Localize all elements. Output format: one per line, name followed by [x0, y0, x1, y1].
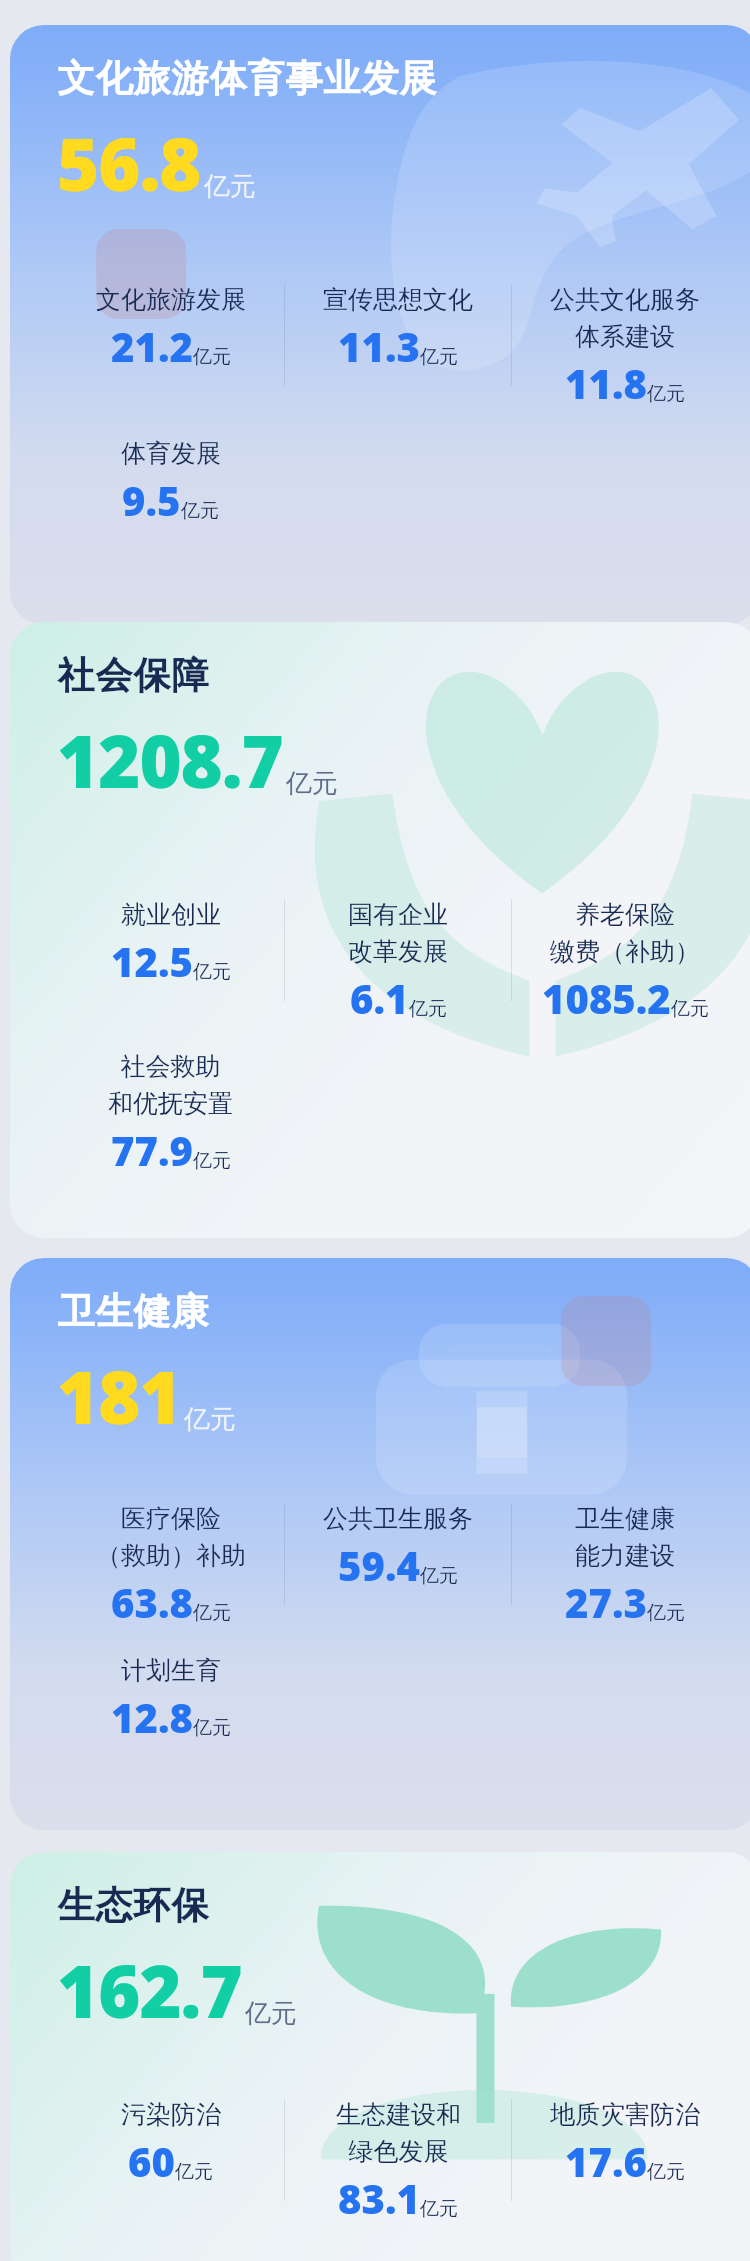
- staticText: 卫生健康 能力建设: [575, 1503, 675, 1571]
- staticText: 养老保险 缴费（补助）: [550, 899, 700, 967]
- staticText: 亿元: [647, 382, 685, 406]
- staticText: 亿元: [193, 1149, 231, 1173]
- button[interactable]: 公共卫生服务: [291, 1503, 505, 1592]
- staticText: 1208.7: [57, 711, 283, 809]
- staticText: 亿元: [647, 1601, 685, 1625]
- button[interactable]: 卫生健康: [10, 1258, 750, 1830]
- button[interactable]: 文化旅游体育事业发展: [10, 25, 750, 625]
- staticText: 12.5: [111, 934, 193, 988]
- staticText: 亿元: [420, 2197, 458, 2221]
- button[interactable]: 污染防治: [63, 2099, 278, 2188]
- staticText: 亿元: [193, 1716, 231, 1740]
- staticText: 11.3: [338, 319, 420, 373]
- staticText: 21.2: [111, 319, 193, 373]
- button[interactable]: 社会救助 和优抚安置: [63, 1051, 278, 1177]
- staticText: 77.9: [111, 1123, 193, 1177]
- staticText: 国有企业 改革发展: [348, 899, 448, 967]
- button[interactable]: 公共文化服务 体系建设: [518, 284, 732, 410]
- button[interactable]: 医疗保险 （救助）补助: [63, 1503, 278, 1629]
- staticText: 11.8: [565, 356, 647, 410]
- staticText: 生态建设和 绿色发展: [336, 2099, 461, 2167]
- button[interactable]: 生态建设和 绿色发展: [291, 2099, 505, 2225]
- button[interactable]: 宣传思想文化: [291, 284, 505, 373]
- staticText: 亿元: [647, 2160, 685, 2184]
- staticText: 污染防治: [121, 2099, 221, 2130]
- button[interactable]: 体育发展: [63, 438, 278, 527]
- staticText: 亿元: [175, 2160, 213, 2184]
- staticText: 卫生健康: [57, 1288, 209, 1335]
- staticText: 就业创业: [121, 899, 221, 930]
- button[interactable]: 卫生健康 能力建设: [518, 1503, 732, 1629]
- staticText: 6.1: [350, 971, 409, 1025]
- button[interactable]: 地质灾害防治: [518, 2099, 732, 2188]
- staticText: 181: [57, 1347, 181, 1445]
- staticText: 社会救助 和优抚安置: [108, 1051, 233, 1119]
- staticText: 59.4: [338, 1538, 420, 1592]
- staticText: 12.8: [111, 1690, 193, 1744]
- staticText: 27.3: [565, 1575, 647, 1629]
- staticText: 公共文化服务 体系建设: [550, 284, 700, 352]
- staticText: 83.1: [338, 2171, 420, 2225]
- staticText: 亿元: [409, 997, 447, 1021]
- staticText: 9.5: [122, 473, 181, 527]
- staticText: 医疗保险 （救助）补助: [96, 1503, 246, 1571]
- staticText: 社会保障: [57, 652, 209, 699]
- staticText: 亿元: [184, 1403, 236, 1436]
- button[interactable]: 就业创业: [63, 899, 278, 988]
- staticText: 文化旅游体育事业发展: [57, 55, 437, 102]
- staticText: 亿元: [193, 960, 231, 984]
- button[interactable]: 养老保险 缴费（补助）: [518, 899, 732, 1025]
- staticText: 亿元: [193, 1601, 231, 1625]
- staticText: 亿元: [245, 1997, 297, 2030]
- staticText: 亿元: [420, 1564, 458, 1588]
- staticText: 56.8: [57, 114, 201, 212]
- staticText: 63.8: [111, 1575, 193, 1629]
- staticText: 亿元: [671, 997, 709, 1021]
- staticText: 亿元: [181, 499, 219, 523]
- staticText: 1085.2: [542, 971, 671, 1025]
- button[interactable]: 国有企业 改革发展: [291, 899, 505, 1025]
- staticText: 亿元: [193, 345, 231, 369]
- staticText: 计划生育: [121, 1655, 221, 1686]
- staticText: 生态环保: [57, 1882, 209, 1929]
- staticText: 亿元: [204, 170, 256, 203]
- button[interactable]: 社会保障: [10, 622, 750, 1238]
- staticText: 宣传思想文化: [323, 284, 473, 315]
- button[interactable]: 文化旅游发展: [63, 284, 278, 373]
- staticText: 162.7: [57, 1941, 242, 2039]
- staticText: 文化旅游发展: [96, 284, 246, 315]
- staticText: 体育发展: [121, 438, 221, 469]
- button[interactable]: 生态环保: [10, 1852, 750, 2261]
- staticText: 17.6: [565, 2134, 647, 2188]
- button[interactable]: 计划生育: [63, 1655, 278, 1744]
- staticText: 亿元: [286, 767, 338, 800]
- staticText: 地质灾害防治: [550, 2099, 700, 2130]
- staticText: 60: [128, 2134, 175, 2188]
- staticText: 公共卫生服务: [323, 1503, 473, 1534]
- staticText: 亿元: [420, 345, 458, 369]
